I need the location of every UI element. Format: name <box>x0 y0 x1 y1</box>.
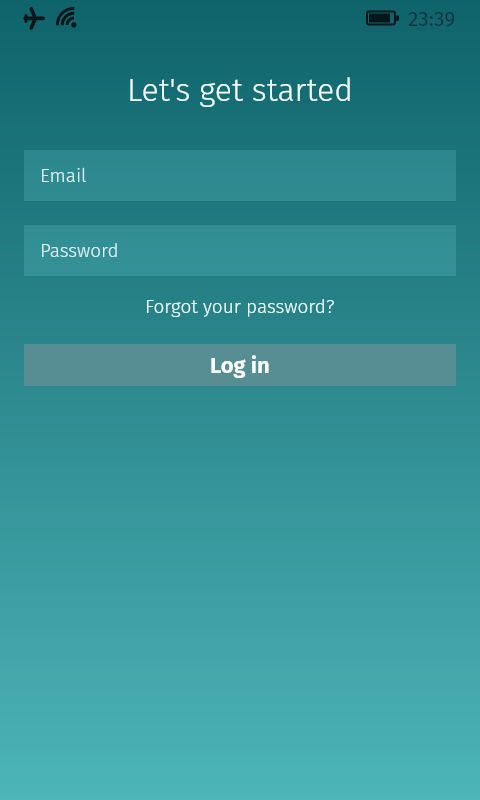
button[interactable]: Password <box>24 225 456 276</box>
staticText: Let's get started <box>127 71 353 109</box>
staticText: 23:39 <box>408 6 456 31</box>
button[interactable]: Log in <box>24 344 456 386</box>
staticText: Password <box>40 239 119 262</box>
button[interactable]: Forgot your password? <box>137 291 343 322</box>
staticText: Log in <box>210 352 270 378</box>
button[interactable]: Email <box>24 150 456 201</box>
staticText: Email <box>40 164 87 187</box>
